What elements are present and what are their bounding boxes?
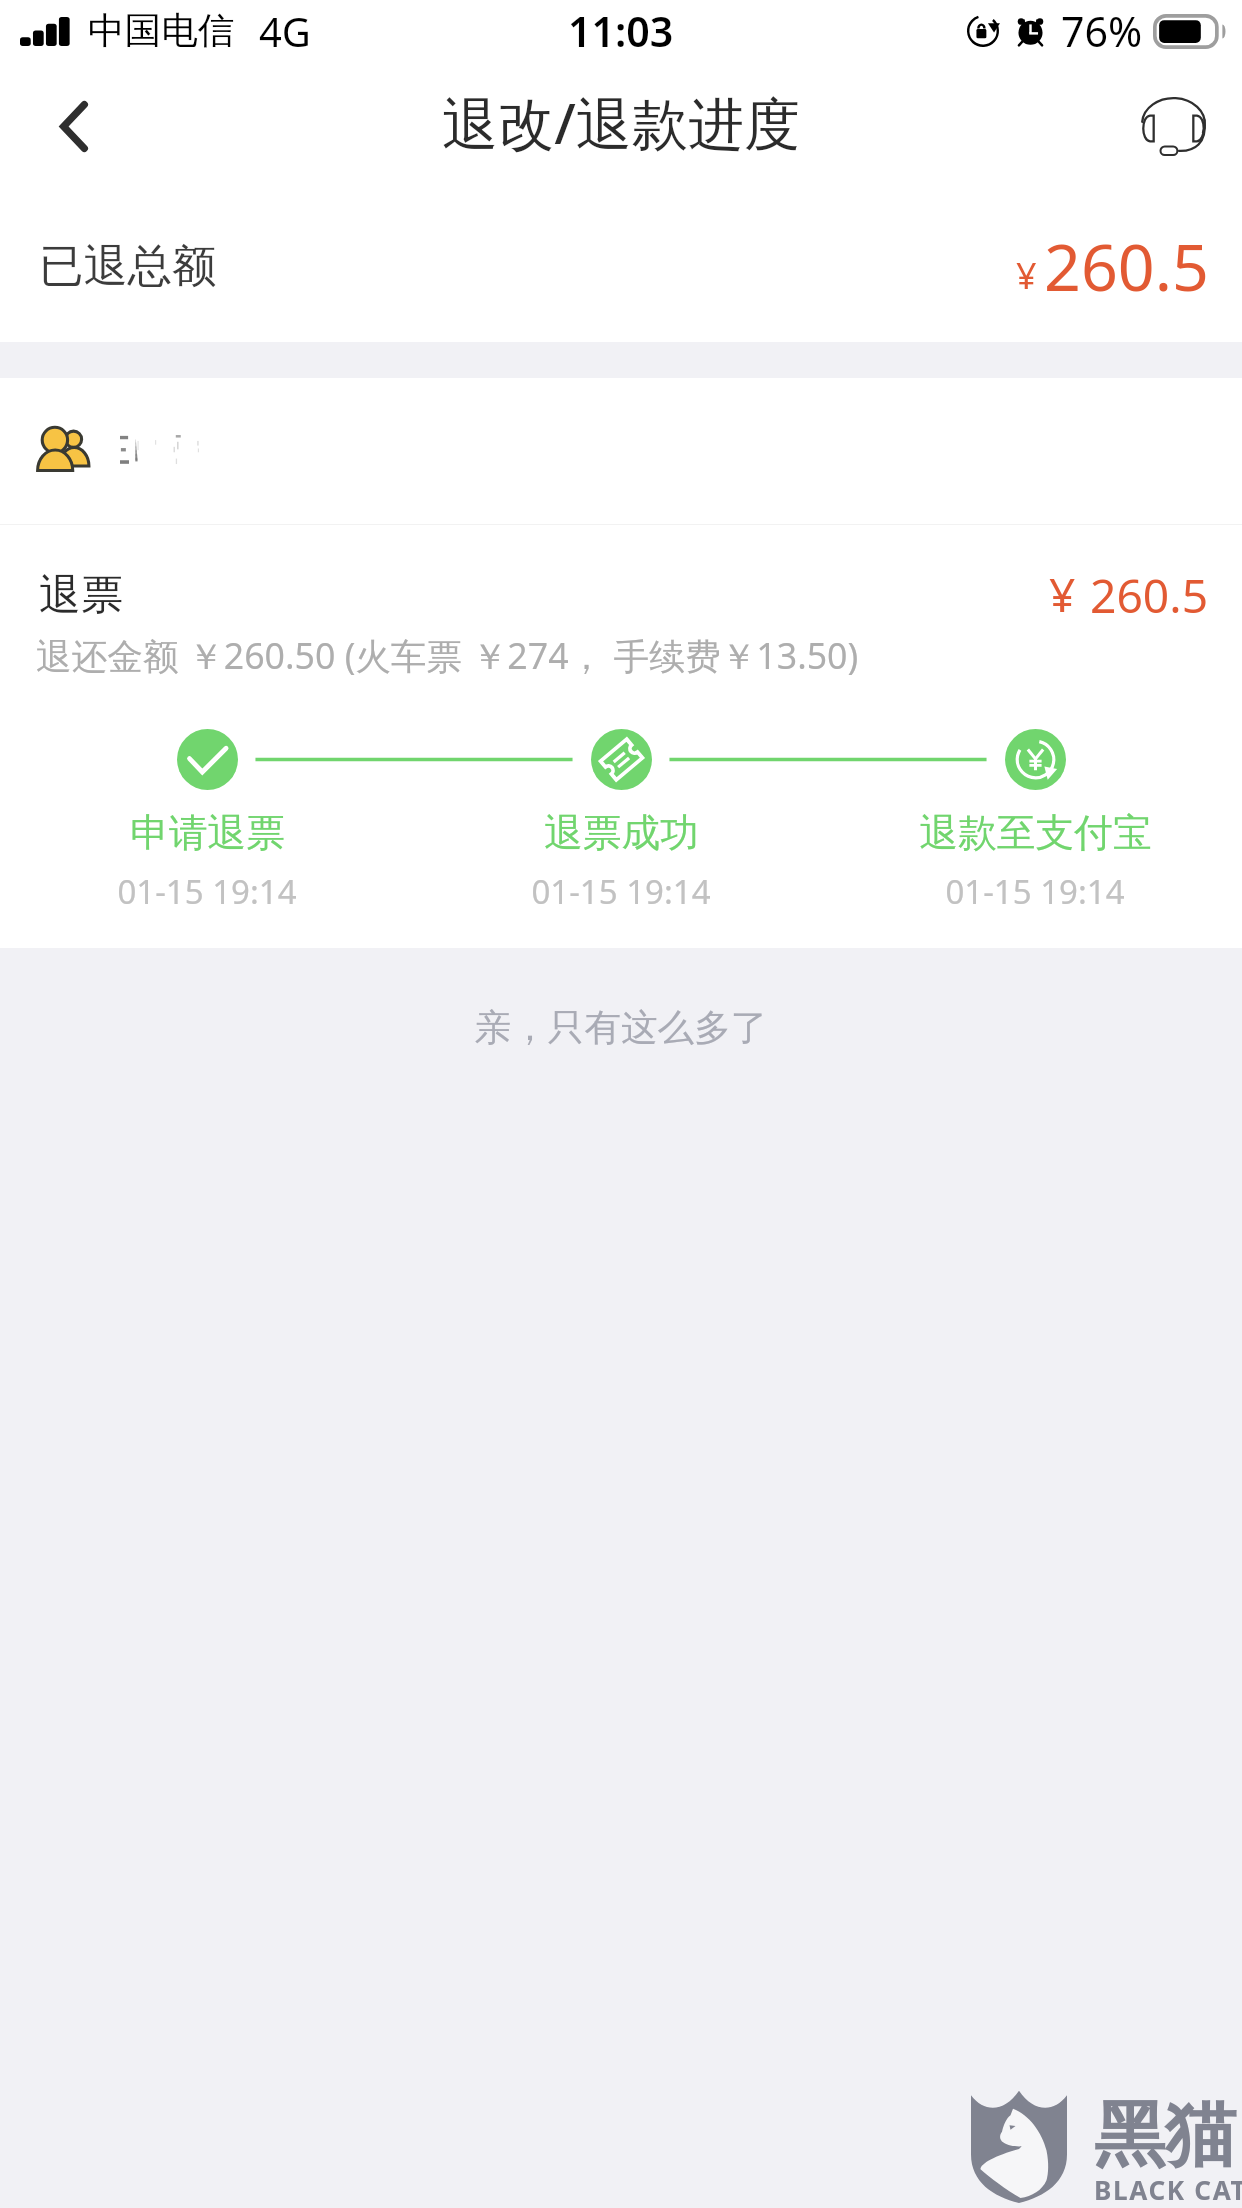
staticText: 4G bbox=[259, 4, 311, 58]
staticText: 已退总额 bbox=[39, 238, 217, 294]
button[interactable]: 退票 bbox=[0, 525, 1242, 948]
button[interactable]: Back bbox=[0, 62, 132, 190]
staticText: 76% bbox=[1061, 3, 1143, 59]
staticText: 退票 bbox=[39, 569, 123, 622]
button[interactable]: 已退总额 bbox=[0, 190, 1242, 342]
staticText: 申请退票 bbox=[130, 809, 285, 858]
staticText: 退改/退款进度 bbox=[442, 84, 801, 161]
staticText: 11:03 bbox=[568, 3, 674, 59]
staticText: 01-15 19:14 bbox=[117, 869, 297, 914]
staticText: 退票成功 bbox=[544, 809, 699, 858]
staticText: 中国电信 bbox=[88, 8, 235, 54]
staticText: 退款至支付宝 bbox=[919, 809, 1152, 858]
staticText: 黑猫 bbox=[1094, 2091, 1237, 2181]
staticText: 01-15 19:14 bbox=[531, 869, 711, 914]
staticText: 01-15 19:14 bbox=[945, 869, 1125, 914]
staticText: ¥ bbox=[1049, 563, 1076, 626]
button[interactable] bbox=[0, 378, 1242, 524]
staticText: 退还金额 ￥260.50 (火车票 ￥274， 手续费￥13.50) bbox=[36, 631, 859, 680]
staticText: 260.5 bbox=[1044, 222, 1209, 310]
staticText: BLACK CAT bbox=[1094, 2172, 1242, 2208]
staticText: ¥ bbox=[1016, 251, 1037, 300]
staticText: 260.5 bbox=[1090, 564, 1209, 627]
staticText: 亲，只有这么多了 bbox=[0, 1005, 1242, 1051]
button[interactable]: Customer service bbox=[1104, 62, 1242, 190]
